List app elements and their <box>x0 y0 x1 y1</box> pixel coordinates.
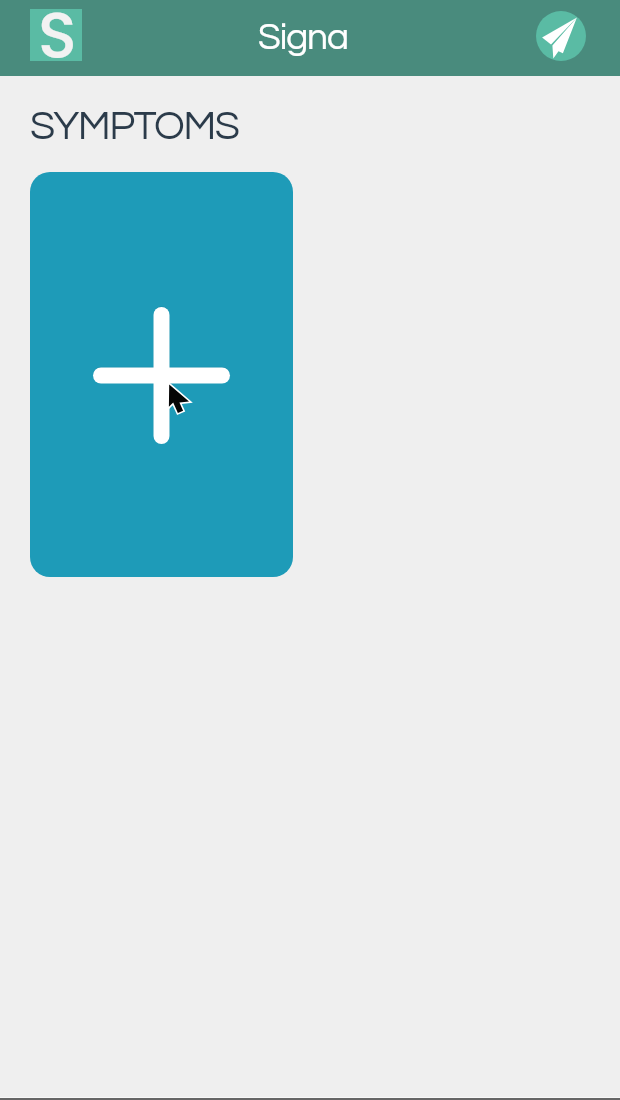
staticText: SYMPTOMS <box>30 105 239 147</box>
staticText: S <box>38 0 77 81</box>
button[interactable]: Add symptom <box>30 172 293 577</box>
staticText: Signa <box>258 19 348 57</box>
button[interactable]: Send <box>536 11 586 61</box>
button[interactable]: Signa home <box>30 9 82 61</box>
